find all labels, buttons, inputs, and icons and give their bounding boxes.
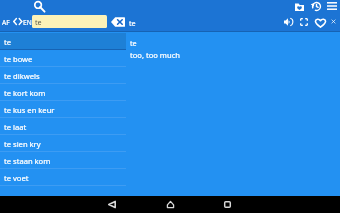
- button[interactable]: te: [0, 33, 126, 50]
- staticText: te: [130, 38, 137, 48]
- button[interactable]: Fullscreen: [300, 18, 308, 26]
- button[interactable]: te bowe: [0, 50, 126, 67]
- staticText: too, too much: [130, 50, 180, 60]
- button[interactable]: Pronounce: [284, 18, 293, 26]
- button[interactable]: te kort kom: [0, 84, 126, 101]
- staticText: AF: [2, 18, 10, 27]
- button[interactable]: Home: [153, 196, 187, 213]
- button[interactable]: te voet: [0, 169, 126, 186]
- button[interactable]: te staan kom: [0, 152, 126, 169]
- button[interactable]: te kus en keur: [0, 101, 126, 118]
- button[interactable]: Add to favourites: [315, 18, 326, 28]
- button[interactable]: te dikwels: [0, 67, 126, 84]
- staticText: te laat: [4, 122, 27, 132]
- button[interactable]: Search: [34, 1, 45, 12]
- button[interactable]: Menu: [327, 2, 337, 10]
- staticText: EN: [23, 18, 32, 27]
- button[interactable]: Close: [331, 19, 336, 24]
- staticText: te: [129, 18, 136, 28]
- button[interactable]: Favourites: [295, 3, 304, 11]
- button[interactable]: te laat: [0, 118, 126, 135]
- button[interactable]: Recents: [210, 196, 244, 213]
- staticText: te voet: [4, 173, 29, 183]
- staticText: te: [35, 17, 42, 27]
- staticText: te kus en keur: [4, 105, 55, 115]
- staticText: te: [4, 37, 12, 47]
- button[interactable]: te: [32, 15, 107, 28]
- staticText: te staan kom: [4, 156, 51, 166]
- button[interactable]: AF: [2, 16, 32, 27]
- button[interactable]: History: [310, 2, 321, 11]
- staticText: te sien kry: [4, 139, 41, 149]
- staticText: te kort kom: [4, 88, 46, 98]
- button[interactable]: te sien kry: [0, 135, 126, 152]
- staticText: te dikwels: [4, 71, 40, 81]
- button[interactable]: Back: [95, 196, 129, 213]
- staticText: te bowe: [4, 54, 33, 64]
- button[interactable]: Clear: [111, 17, 125, 27]
